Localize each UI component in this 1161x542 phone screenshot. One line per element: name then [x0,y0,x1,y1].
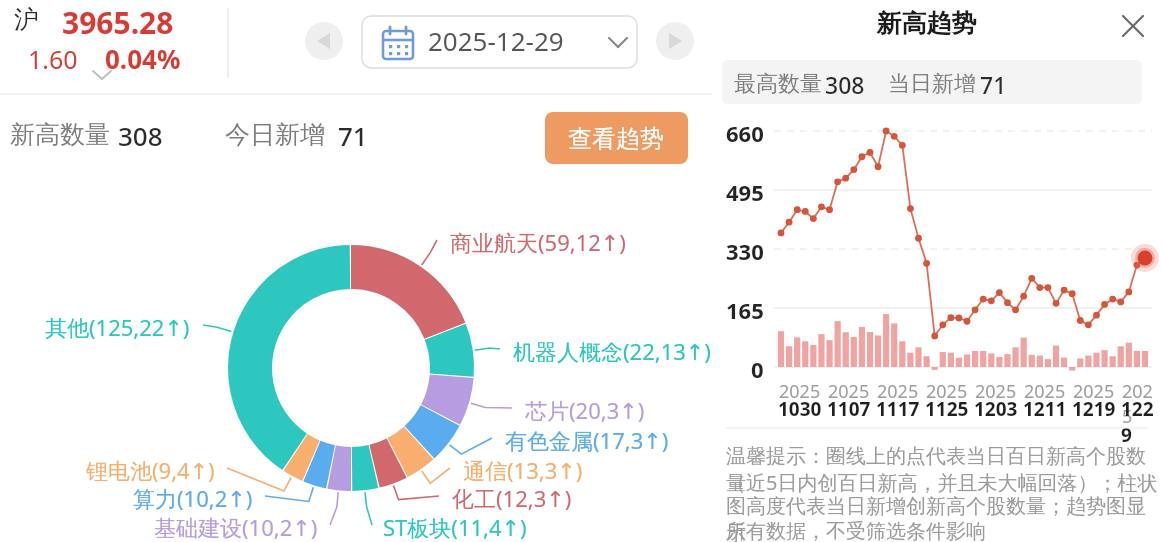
button[interactable]: Close [1117,8,1157,48]
button[interactable] [545,112,688,164]
button[interactable]: Next day [656,18,694,56]
button[interactable] [0,0,230,94]
button[interactable]: Previous day [305,18,343,56]
button[interactable] [362,16,637,68]
